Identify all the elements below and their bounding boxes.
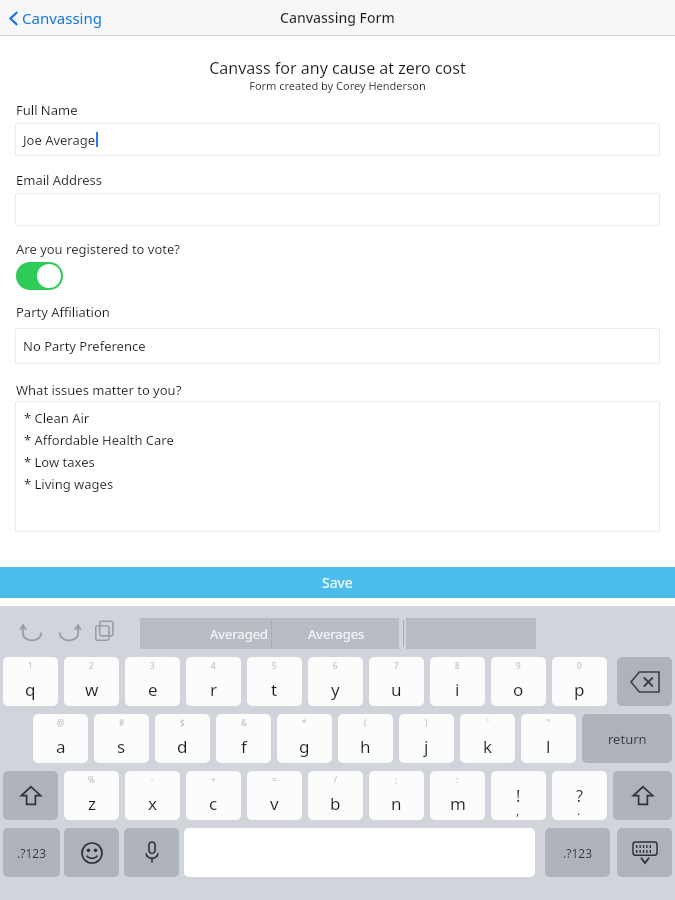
staticText: " <box>547 717 551 728</box>
staticText: 5 <box>272 660 277 671</box>
button[interactable]: 7 <box>369 657 424 706</box>
staticText: What issues matter to you? <box>16 381 182 399</box>
button[interactable]: ( <box>338 714 393 763</box>
staticText: Save <box>322 573 353 592</box>
staticText: z <box>88 792 96 815</box>
button[interactable]: : <box>430 771 485 820</box>
staticText: 0 <box>577 660 582 671</box>
button[interactable]: .?123 <box>3 828 60 877</box>
staticText: & <box>241 717 247 728</box>
staticText: m <box>450 792 466 815</box>
staticText: ? <box>576 785 583 807</box>
staticText: 8 <box>455 660 460 671</box>
button[interactable]: Hide keyboard <box>617 828 672 877</box>
button[interactable]: ) <box>399 714 454 763</box>
button[interactable]: Save <box>0 567 675 598</box>
button[interactable]: 0 <box>552 657 607 706</box>
button[interactable]: Dictation <box>124 828 179 877</box>
staticText: Canvassing <box>22 8 102 28</box>
staticText: Averages <box>308 625 365 643</box>
button[interactable]: Averaged <box>140 618 337 649</box>
staticText: # <box>119 717 125 728</box>
staticText: ) <box>425 717 428 728</box>
button[interactable]: No Party Preference <box>15 328 660 364</box>
staticText: 3 <box>150 660 155 671</box>
button[interactable]: / <box>308 771 363 820</box>
button[interactable]: % <box>64 771 119 820</box>
staticText: * Low taxes <box>24 453 95 471</box>
staticText: 7 <box>394 660 399 671</box>
staticText: return <box>608 730 647 748</box>
button[interactable]: " <box>521 714 576 763</box>
button[interactable]: Joe Average <box>15 123 660 156</box>
staticText: Form created by Corey Henderson <box>0 78 675 93</box>
button[interactable]: Shift <box>613 771 672 820</box>
staticText: y <box>331 678 340 701</box>
staticText: $ <box>180 717 185 728</box>
button[interactable]: Canvassing <box>8 8 102 28</box>
staticText: v <box>270 792 279 815</box>
staticText: * Clean Air <box>24 409 90 427</box>
staticText: d <box>177 735 188 758</box>
button[interactable]: = <box>247 771 302 820</box>
button[interactable]: + <box>186 771 241 820</box>
button[interactable]: 5 <box>247 657 302 706</box>
button[interactable]: ; <box>369 771 424 820</box>
staticText: No Party Preference <box>23 337 146 355</box>
staticText: Are you registered to vote? <box>16 240 180 258</box>
staticText: * Living wages <box>24 475 114 493</box>
button[interactable]: 9 <box>491 657 546 706</box>
staticText: .?123 <box>17 845 47 861</box>
staticText: ( <box>364 717 367 728</box>
staticText: g <box>299 735 310 758</box>
staticText: Full Name <box>16 101 78 119</box>
staticText: e <box>148 678 158 701</box>
button[interactable]: 6 <box>308 657 363 706</box>
staticText: 6 <box>333 660 338 671</box>
button[interactable]: - <box>125 771 180 820</box>
button[interactable]: Emoji <box>64 828 119 877</box>
button[interactable]: $ <box>155 714 210 763</box>
staticText: Email Address <box>16 171 102 189</box>
button[interactable]: 4 <box>186 657 241 706</box>
staticText: s <box>117 735 126 758</box>
button[interactable]: & <box>216 714 271 763</box>
staticText: Joe Average <box>23 131 96 149</box>
staticText: , <box>516 802 520 818</box>
staticText: Averaged <box>210 625 268 643</box>
button[interactable]: Paste <box>94 620 116 642</box>
button[interactable]: ! <box>491 771 546 820</box>
staticText: Canvass for any cause at zero cost <box>0 57 675 79</box>
button[interactable]: 3 <box>125 657 180 706</box>
staticText: q <box>25 678 36 701</box>
button[interactable]: .?123 <box>545 828 610 877</box>
button[interactable]: # <box>94 714 149 763</box>
button[interactable]: Undo <box>20 620 44 644</box>
button[interactable]: * Clean Air <box>15 401 660 532</box>
button[interactable]: @ <box>33 714 88 763</box>
button[interactable]: ' <box>460 714 515 763</box>
staticText: . <box>577 802 581 818</box>
staticText: r <box>210 678 218 701</box>
button[interactable]: 2 <box>64 657 119 706</box>
staticText: 2 <box>89 660 94 671</box>
staticText: h <box>360 735 371 758</box>
button[interactable]: return <box>582 714 672 763</box>
button[interactable]: * <box>277 714 332 763</box>
staticText: 9 <box>516 660 521 671</box>
button[interactable]: ? <box>552 771 607 820</box>
button[interactable]: Shift <box>3 771 58 820</box>
button[interactable] <box>15 193 660 226</box>
button[interactable]: 1 <box>3 657 58 706</box>
button[interactable]: 8 <box>430 657 485 706</box>
button[interactable]: Backspace <box>617 657 672 706</box>
staticText: ; <box>395 774 398 785</box>
button[interactable]: Averages <box>274 618 399 649</box>
staticText: + <box>211 774 216 785</box>
staticText: p <box>574 678 585 701</box>
button[interactable]: Registered to vote toggle <box>16 262 63 290</box>
button[interactable]: Redo <box>57 620 81 644</box>
staticText: w <box>85 678 99 701</box>
